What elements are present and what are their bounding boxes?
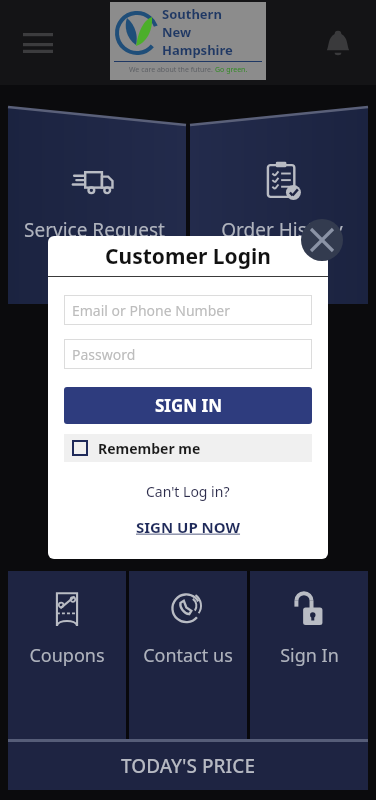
button[interactable]: Password bbox=[64, 339, 312, 369]
staticText: Southern bbox=[162, 5, 222, 23]
button[interactable]: Order History bbox=[188, 111, 376, 304]
button[interactable]: Email or Phone Number bbox=[64, 295, 312, 325]
button[interactable]: Menu bbox=[14, 19, 62, 67]
staticText: Order History bbox=[221, 217, 343, 243]
button[interactable]: Notifications bbox=[314, 19, 362, 67]
staticText: Can't Log in? bbox=[146, 482, 230, 501]
staticText: Password bbox=[72, 345, 136, 364]
button[interactable]: SIGN IN bbox=[64, 387, 312, 424]
staticText: Sign In bbox=[280, 643, 339, 668]
staticText: SIGN IN bbox=[155, 394, 222, 417]
staticText: Customer Login bbox=[105, 242, 271, 271]
staticText: We care about the future. bbox=[129, 65, 215, 75]
button[interactable]: Service Request bbox=[0, 111, 188, 304]
staticText: TODAY'S PRICE bbox=[121, 753, 255, 779]
button[interactable]: Sign In bbox=[250, 571, 368, 739]
button[interactable]: TODAY'S PRICE bbox=[8, 742, 368, 790]
staticText: Service Request bbox=[24, 217, 165, 243]
staticText: New Hampshire bbox=[162, 23, 262, 59]
staticText: Remember me bbox=[98, 439, 201, 458]
staticText: Coupons bbox=[29, 643, 105, 668]
button[interactable]: Can't Log in? bbox=[64, 482, 312, 501]
button[interactable]: Coupons bbox=[8, 571, 126, 739]
staticText: SIGN UP NOW bbox=[136, 517, 241, 537]
staticText: Contact us bbox=[143, 643, 233, 668]
button[interactable]: SIGN UP NOW bbox=[64, 517, 312, 537]
button[interactable]: Southern bbox=[110, 2, 266, 80]
button[interactable]: Close bbox=[301, 219, 343, 261]
staticText: Go green. bbox=[215, 65, 248, 75]
button[interactable]: Contact us bbox=[129, 571, 247, 739]
button[interactable]: Remember me bbox=[64, 434, 312, 462]
staticText: Email or Phone Number bbox=[72, 301, 230, 320]
